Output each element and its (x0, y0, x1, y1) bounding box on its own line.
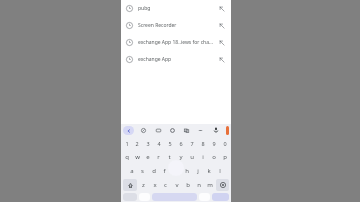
button[interactable]: More options (196, 126, 205, 135)
staticText: 4 (157, 140, 161, 147)
button[interactable]: 7 (187, 138, 196, 149)
button[interactable]: c (161, 179, 170, 191)
button[interactable]: Screen Recorder (121, 17, 231, 34)
button[interactable]: k (204, 165, 213, 177)
button[interactable]: e (143, 151, 152, 163)
button[interactable]: v (172, 179, 181, 191)
button[interactable]: s (138, 165, 147, 177)
button[interactable]: Insert suggestion (217, 55, 226, 64)
staticText: 8 (201, 140, 205, 147)
staticText: 1 (125, 140, 129, 147)
button[interactable]: h (182, 165, 191, 177)
staticText: t (168, 153, 171, 161)
button[interactable]: Search (212, 193, 229, 201)
button[interactable]: Insert suggestion (217, 4, 226, 13)
button[interactable]: j (193, 165, 202, 177)
button[interactable]: z (139, 179, 148, 191)
button[interactable]: Voice input (211, 125, 221, 135)
button[interactable]: Emoji (168, 126, 177, 135)
staticText: exchange App 18..iews for chanel (138, 39, 214, 46)
staticText: w (135, 153, 140, 161)
button[interactable]: 8 (198, 138, 207, 149)
button[interactable]: p (220, 151, 229, 163)
button[interactable]: exchange App (121, 51, 231, 68)
staticText: s (141, 167, 144, 175)
staticText: m (207, 181, 213, 189)
staticText: exchange App (138, 56, 214, 63)
button[interactable]: b (183, 179, 192, 191)
button[interactable]: q (123, 151, 131, 163)
staticText: a (130, 167, 134, 175)
staticText: x (153, 181, 157, 189)
button[interactable]: t (165, 151, 174, 163)
staticText: 3 (146, 140, 150, 147)
staticText: d (152, 167, 156, 175)
staticText: y (179, 153, 183, 161)
staticText: h (185, 167, 189, 175)
staticText: k (207, 167, 211, 175)
staticText: q (125, 153, 129, 161)
staticText: o (212, 153, 216, 161)
button[interactable]: Symbols (123, 193, 137, 201)
button[interactable]: m (205, 179, 214, 191)
button[interactable]: r (154, 151, 163, 163)
staticText: e (146, 153, 150, 161)
button[interactable]: 3 (143, 138, 152, 149)
button[interactable]: 0 (220, 138, 229, 149)
staticText: c (164, 181, 167, 189)
button[interactable]: 4 (154, 138, 163, 149)
button[interactable]: 6 (176, 138, 185, 149)
staticText: 9 (212, 140, 216, 147)
button[interactable]: l (215, 165, 224, 177)
staticText: 0 (223, 140, 227, 147)
staticText: l (219, 167, 221, 175)
staticText: 2 (135, 140, 139, 147)
button[interactable]: o (209, 151, 218, 163)
button[interactable]: Insert suggestion (217, 21, 226, 30)
staticText: v (175, 181, 179, 189)
button[interactable]: exchange App 18..iews for chanel (121, 34, 231, 51)
button[interactable]: Shift (123, 179, 137, 191)
button[interactable]: n (194, 179, 203, 191)
staticText: b (186, 181, 190, 189)
staticText: z (142, 181, 145, 189)
button[interactable]: i (198, 151, 207, 163)
button[interactable]: 9 (209, 138, 218, 149)
staticText: 6 (179, 140, 183, 147)
button[interactable]: a (128, 165, 136, 177)
button[interactable]: pubg (121, 0, 231, 17)
staticText: u (190, 153, 194, 161)
button[interactable]: Translate (182, 126, 191, 135)
staticText: 7 (190, 140, 194, 147)
button[interactable]: u (187, 151, 196, 163)
button[interactable]: Expand toolbar (123, 126, 134, 135)
staticText: r (157, 153, 160, 161)
button[interactable]: Insert suggestion (217, 38, 226, 47)
staticText: f (163, 167, 166, 175)
staticText: i (202, 153, 204, 161)
staticText: p (223, 153, 227, 161)
button[interactable]: y (176, 151, 185, 163)
staticText: 5 (168, 140, 172, 147)
button[interactable]: 5 (165, 138, 174, 149)
button[interactable]: 1 (123, 138, 131, 149)
staticText: j (197, 167, 199, 175)
button[interactable]: d (149, 165, 158, 177)
button[interactable]: w (133, 151, 141, 163)
staticText: Screen Recorder (138, 22, 214, 29)
button[interactable]: Stickers (139, 126, 148, 135)
button[interactable]: f (160, 165, 169, 177)
button[interactable]: Backspace (216, 179, 229, 191)
button[interactable]: x (150, 179, 159, 191)
button[interactable]: GIF (154, 126, 163, 135)
staticText: pubg (138, 5, 214, 12)
staticText: n (197, 181, 201, 189)
button[interactable]: 2 (133, 138, 141, 149)
